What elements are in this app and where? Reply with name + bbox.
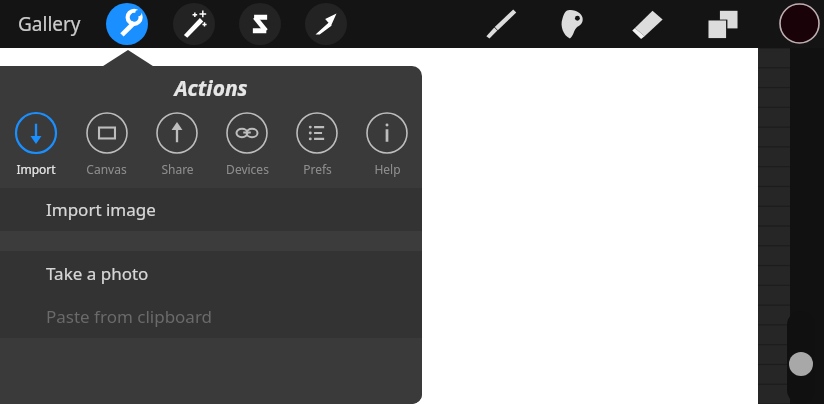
staticText: Actions (174, 74, 248, 103)
button[interactable]: Paste from clipboard (0, 295, 422, 338)
button[interactable]: Canvas (71, 110, 142, 188)
staticText: Gallery (18, 11, 81, 37)
staticText: Canvas (86, 161, 127, 177)
button[interactable]: Devices (212, 110, 282, 188)
button[interactable]: Colour (778, 2, 821, 45)
staticText: Share (161, 161, 194, 177)
button[interactable]: Size slider (787, 311, 815, 404)
button[interactable]: Layers (701, 2, 745, 46)
staticText: Prefs (303, 161, 332, 177)
button[interactable]: Paintbrush (478, 2, 522, 46)
button[interactable]: Take a photo (0, 251, 422, 295)
staticText: Paste from clipboard (46, 305, 213, 328)
button[interactable]: Adjustments (173, 3, 215, 45)
button[interactable]: Help (352, 110, 422, 188)
button[interactable]: Smudge (551, 2, 595, 46)
staticText: Import (16, 161, 56, 177)
staticText: Devices (226, 161, 269, 177)
staticText: Take a photo (46, 262, 149, 285)
button[interactable]: Transform (305, 3, 347, 45)
button[interactable]: Import (0, 110, 71, 188)
button[interactable]: Share (142, 110, 212, 188)
button[interactable]: Import image (0, 188, 422, 231)
button[interactable]: Selection (239, 3, 281, 45)
button[interactable]: Gallery (14, 5, 85, 43)
staticText: Help (374, 161, 401, 177)
button[interactable]: Prefs (282, 110, 352, 188)
button[interactable]: Eraser (627, 2, 671, 46)
button[interactable]: Actions (106, 3, 148, 45)
staticText: Import image (46, 198, 156, 221)
